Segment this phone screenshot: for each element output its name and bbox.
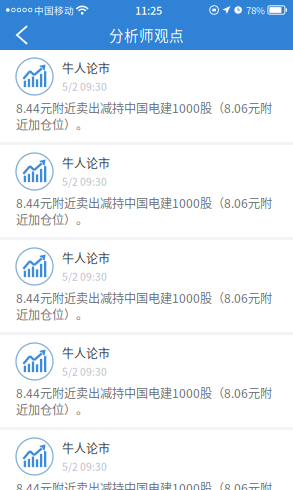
staticText: 8.44元附近卖出减持中国电建1000股（8.06元附近加仓位）。 [16,194,272,228]
staticText: 分析师观点 [109,24,184,45]
staticText: 78% [246,3,265,17]
staticText: 中国移动 [32,3,74,17]
staticText: 5/2 09:30 [62,79,107,94]
staticText: 8.44元附近卖出减持中国电建1000股（8.06元附近加仓位）。 [16,289,272,323]
staticText: 5/2 09:30 [62,174,107,189]
staticText: 牛人论市 [62,154,110,172]
staticText: 牛人论市 [62,59,110,77]
staticText: 5/2 09:30 [62,269,107,284]
button[interactable]: 牛人论市 [0,430,293,490]
button[interactable]: 牛人论市 [0,240,293,332]
staticText: 牛人论市 [62,344,110,362]
staticText: 8.44元附近卖出减持中国电建1000股（8.06元附近加仓位）。 [16,384,272,418]
staticText: 5/2 09:30 [62,364,107,379]
staticText: 牛人论市 [62,249,110,267]
button[interactable]: 牛人论市 [0,335,293,427]
staticText: 5/2 09:30 [62,459,107,474]
staticText: 8.44元附近卖出减持中国电建1000股（8.06元附近加仓位）。 [16,99,272,133]
staticText: 8.44元附近卖出减持中国电建1000股（8.06元附近加仓位）。 [16,479,272,490]
button[interactable]: 牛人论市 [0,145,293,237]
staticText: 牛人论市 [62,439,110,457]
staticText: 11:25 [135,2,162,18]
button[interactable]: Back [0,20,46,50]
button[interactable]: 牛人论市 [0,50,293,142]
